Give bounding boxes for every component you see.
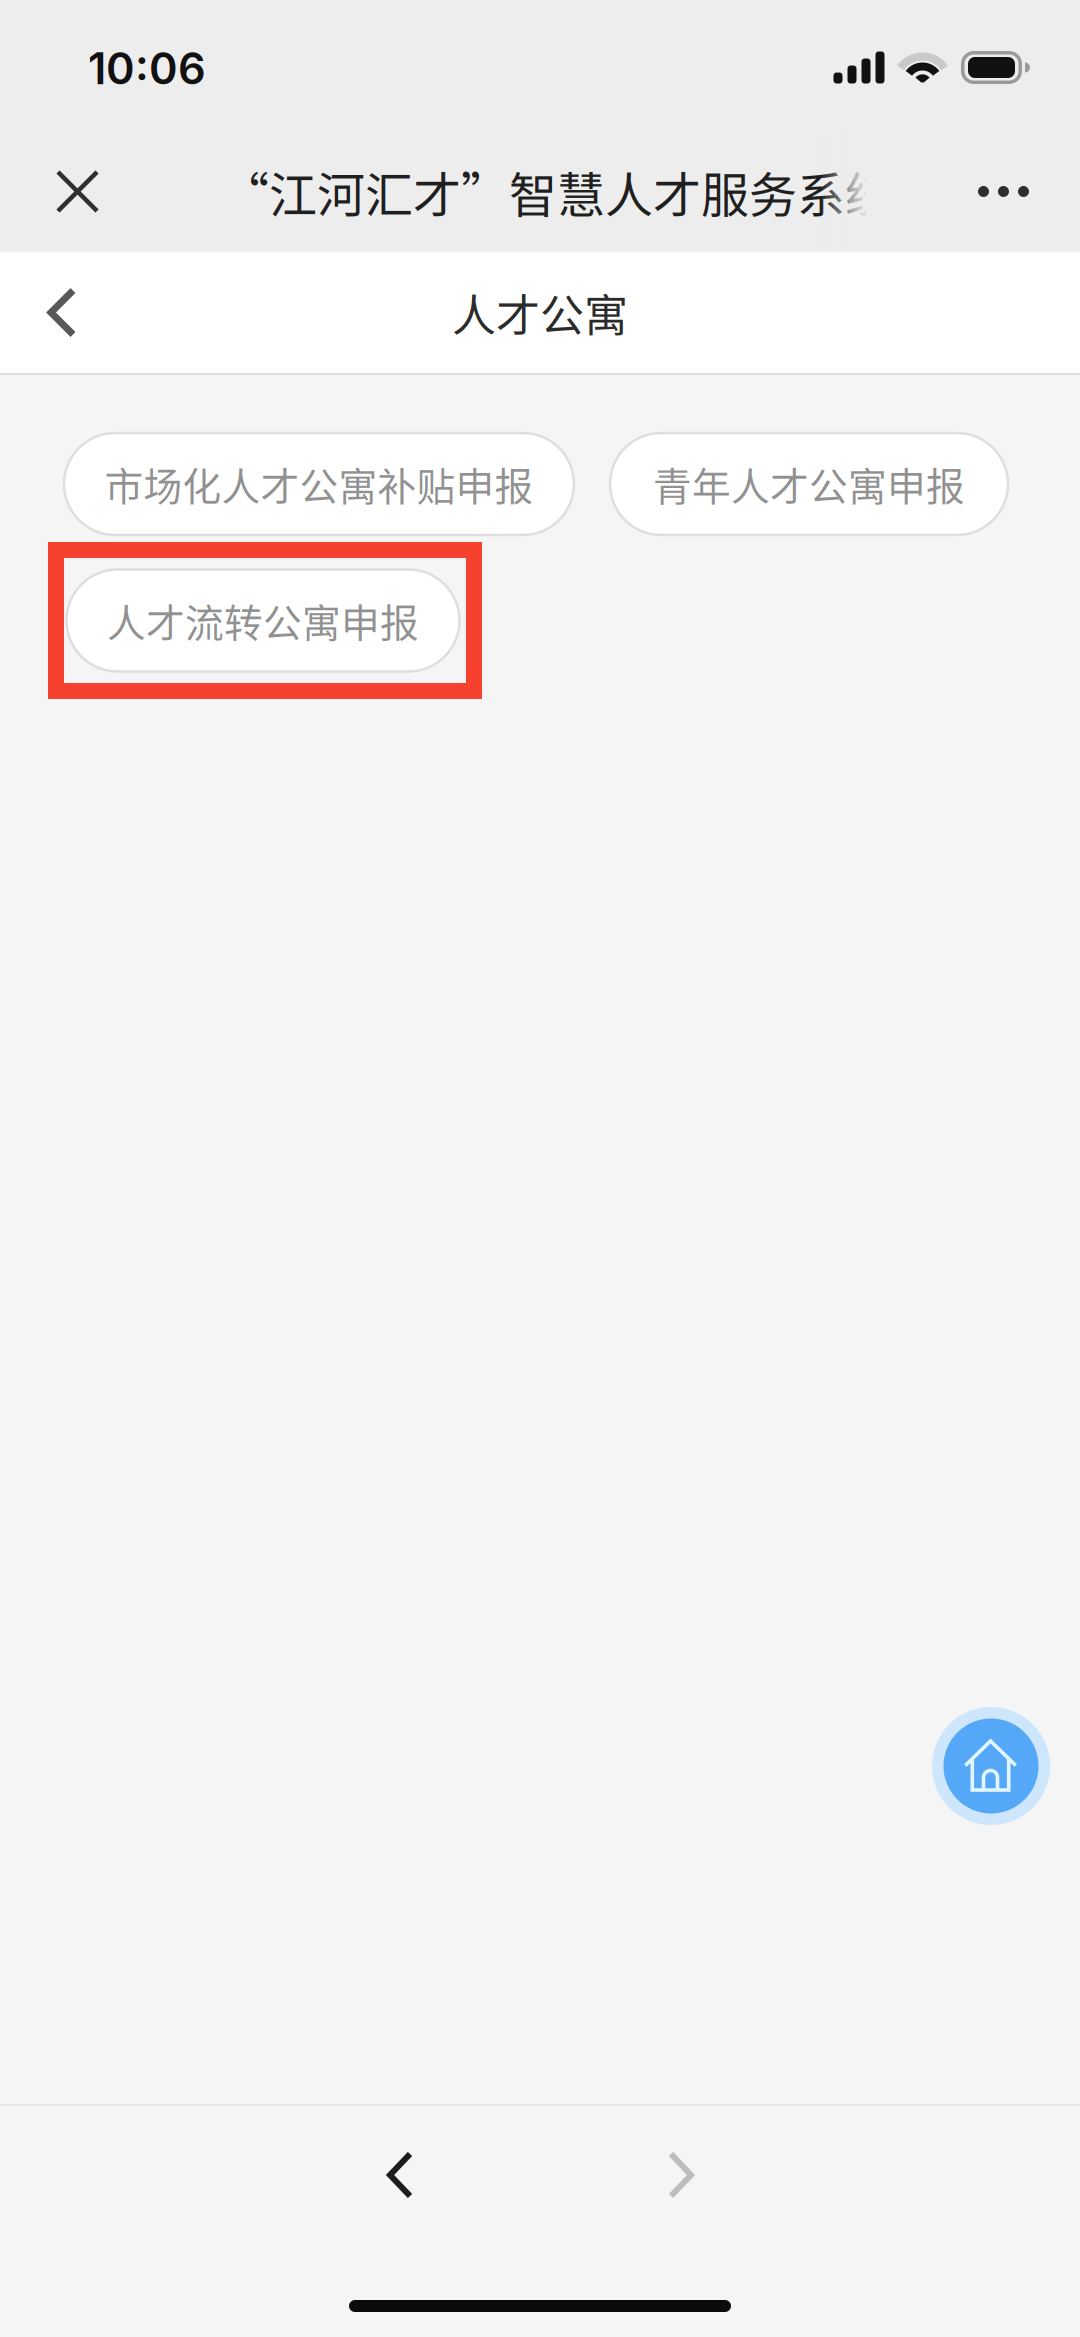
button[interactable]: 市场化人才公寓补贴申报 bbox=[64, 433, 574, 535]
button[interactable]: More options bbox=[978, 131, 1080, 252]
staticText: 10:06 bbox=[88, 42, 206, 95]
button[interactable]: Close bbox=[0, 131, 97, 252]
staticText: “江河汇才”智慧人才服务系统 bbox=[221, 157, 893, 226]
staticText: 人才公寓 bbox=[452, 281, 628, 344]
staticText: 人才流转公寓申报 bbox=[107, 592, 419, 648]
button[interactable]: Go forward bbox=[621, 2101, 741, 2249]
staticText: 青年人才公寓申报 bbox=[653, 456, 965, 512]
button[interactable]: Go back bbox=[340, 2101, 460, 2249]
button[interactable]: 青年人才公寓申报 bbox=[610, 433, 1008, 535]
button[interactable]: Home bbox=[932, 1707, 1050, 1825]
staticText: 市场化人才公寓补贴申报 bbox=[104, 456, 533, 512]
button[interactable]: Back bbox=[0, 252, 124, 373]
button[interactable]: 人才流转公寓申报 bbox=[66, 569, 459, 671]
